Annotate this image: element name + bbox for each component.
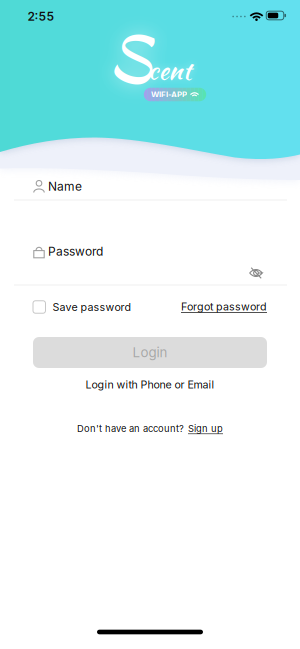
- staticText: Don't have an account?: [77, 423, 184, 434]
- button[interactable]: Password: [0, 241, 300, 261]
- staticText: cent: [147, 52, 191, 89]
- button[interactable]: [249, 267, 263, 278]
- button[interactable]: Login with Phone or Email: [0, 375, 300, 393]
- button[interactable]: Don't have an account?: [77, 419, 223, 437]
- staticText: Login with Phone or Email: [85, 378, 214, 391]
- staticText: Forgot password: [181, 300, 267, 313]
- staticText: Password: [48, 244, 103, 259]
- staticText: S: [108, 13, 151, 102]
- staticText: Sign up: [188, 423, 223, 434]
- staticText: 2:55: [27, 9, 54, 24]
- button[interactable]: Name: [0, 176, 300, 196]
- staticText: WIFI-APP: [151, 90, 187, 99]
- staticText: Name: [48, 179, 82, 194]
- button[interactable]: Forgot password: [80, 297, 300, 315]
- button[interactable]: Login: [33, 337, 267, 368]
- staticText: Login: [132, 345, 167, 360]
- button[interactable]: Save password: [0, 298, 220, 316]
- staticText: Save password: [52, 301, 131, 313]
